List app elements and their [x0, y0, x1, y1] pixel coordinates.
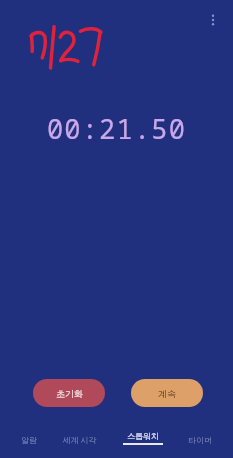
staticText: 알람	[21, 435, 37, 445]
staticText: 계속	[158, 388, 176, 399]
button[interactable]: 스톱워치	[119, 429, 167, 447]
button[interactable]: 알람	[17, 433, 41, 447]
button[interactable]: 계속	[131, 379, 203, 407]
button[interactable]: 세계 시각	[58, 432, 101, 447]
staticText: 타이머	[188, 435, 212, 445]
staticText: 00:21.50	[0, 110, 233, 147]
staticText: 세계 시각	[62, 434, 97, 445]
staticText: 초기화	[56, 388, 83, 399]
staticText: 스톱워치	[127, 431, 159, 441]
button[interactable]: More options	[201, 8, 225, 32]
button[interactable]: 타이머	[184, 433, 216, 447]
button[interactable]: 초기화	[33, 379, 105, 407]
